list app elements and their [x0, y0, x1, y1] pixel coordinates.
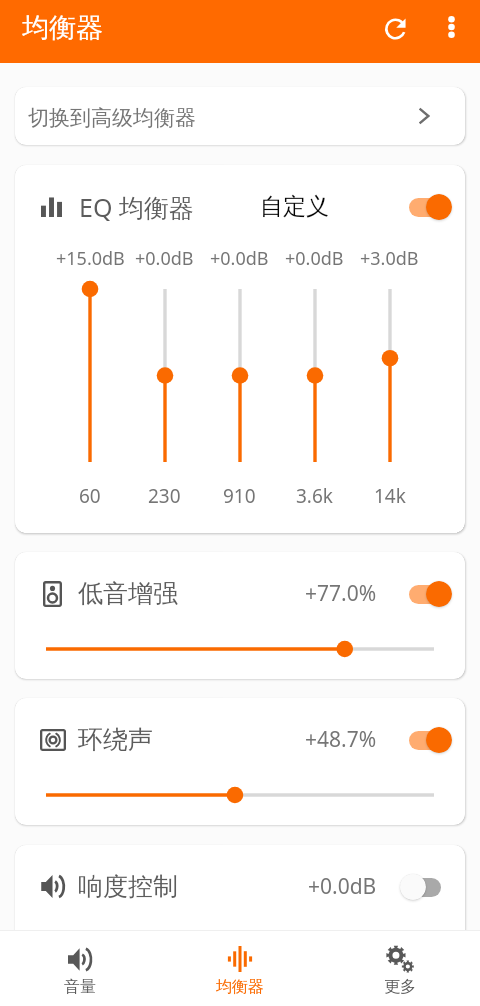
- button[interactable]: Band level: [373, 289, 407, 462]
- button[interactable]: Band level: [298, 289, 332, 462]
- staticText: +77.0%: [305, 579, 377, 608]
- button[interactable]: 更多: [320, 931, 480, 1006]
- button[interactable]: Level: [46, 638, 434, 660]
- staticText: 60: [79, 483, 101, 509]
- staticText: 自定义: [260, 192, 329, 221]
- button[interactable]: Refresh: [365, 5, 422, 59]
- staticText: EQ 均衡器: [79, 190, 194, 224]
- button[interactable]: 切换到高级均衡器: [15, 87, 465, 145]
- staticText: +0.0dB: [135, 246, 194, 271]
- staticText: 低音增强: [78, 578, 178, 609]
- button[interactable]: 音量: [0, 931, 160, 1006]
- button[interactable]: Band level: [148, 289, 182, 462]
- staticText: 910: [223, 483, 256, 509]
- staticText: 14k: [374, 483, 406, 509]
- button[interactable]: Toggle: [409, 580, 453, 608]
- staticText: +0.0dB: [285, 246, 344, 271]
- button[interactable]: Toggle: [409, 193, 453, 221]
- button[interactable]: Band level: [73, 289, 107, 462]
- staticText: 均衡器: [22, 11, 103, 45]
- button[interactable]: Band level: [223, 289, 257, 462]
- button[interactable]: More options: [422, 5, 480, 59]
- button[interactable]: Toggle: [409, 726, 453, 754]
- staticText: +3.0dB: [360, 246, 419, 271]
- staticText: 更多: [384, 977, 416, 997]
- staticText: 环绕声: [78, 724, 153, 755]
- button[interactable]: Toggle: [409, 873, 453, 901]
- staticText: 切换到高级均衡器: [28, 105, 196, 131]
- staticText: 3.6k: [296, 483, 333, 509]
- staticText: 均衡器: [216, 977, 264, 997]
- staticText: +0.0dB: [308, 872, 377, 901]
- staticText: +0.0dB: [210, 246, 269, 271]
- staticText: +15.0dB: [56, 246, 125, 271]
- staticText: 响度控制: [78, 871, 178, 902]
- staticText: 230: [148, 483, 181, 509]
- staticText: +48.7%: [305, 725, 377, 754]
- button[interactable]: Level: [46, 784, 434, 806]
- button[interactable]: 均衡器: [160, 931, 320, 1006]
- staticText: 音量: [64, 977, 96, 997]
